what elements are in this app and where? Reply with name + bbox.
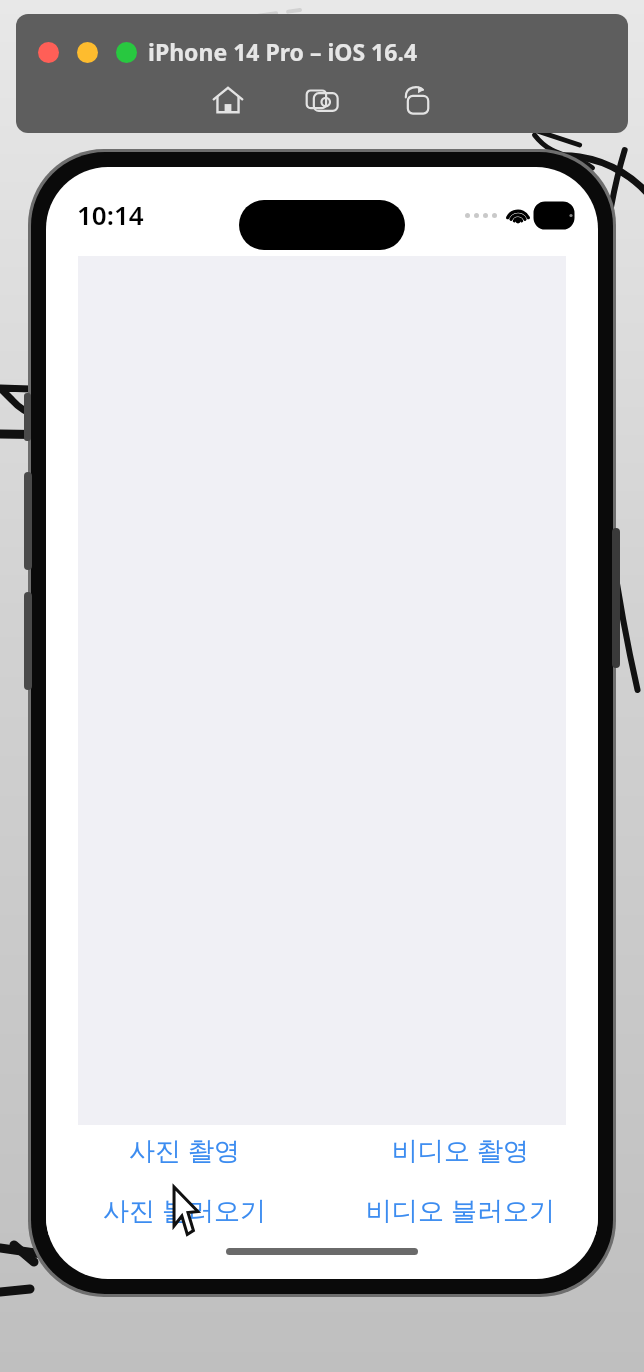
button[interactable]: Minimize [77, 42, 98, 63]
staticText: 비디오 불러오기 [366, 1192, 555, 1228]
staticText: 사진 불러오기 [103, 1192, 266, 1228]
button[interactable]: Close [38, 42, 59, 63]
button[interactable]: 사진 불러오기 [46, 1190, 322, 1230]
button[interactable]: Zoom [116, 42, 137, 63]
staticText: 비디오 촬영 [392, 1132, 529, 1168]
staticText: iPhone 14 Pro – iOS 16.4 [148, 36, 418, 67]
button[interactable]: Home [205, 77, 251, 123]
button[interactable]: 비디오 불러오기 [322, 1190, 598, 1230]
button[interactable]: Rotate [393, 77, 439, 123]
staticText: 사진 촬영 [129, 1132, 240, 1168]
staticText: 10:14 [77, 197, 144, 232]
button[interactable]: 사진 촬영 [46, 1130, 322, 1170]
button[interactable]: 비디오 촬영 [322, 1130, 598, 1170]
button[interactable]: Screenshot [299, 77, 345, 123]
